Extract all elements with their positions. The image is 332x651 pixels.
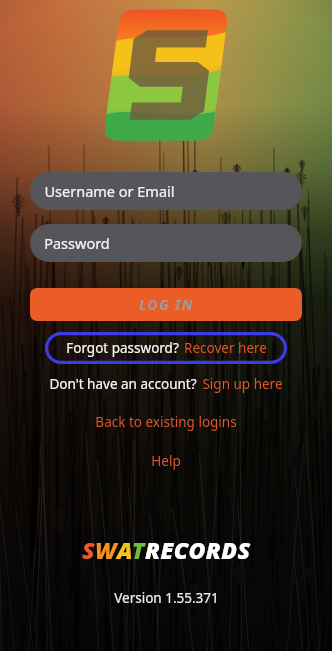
button[interactable]: Don't have an account?	[45, 372, 287, 396]
staticText: Don't have an account?	[49, 375, 197, 393]
button[interactable]: Password	[30, 224, 302, 262]
staticText: Password	[44, 233, 110, 253]
staticText: LOG IN	[139, 295, 194, 314]
button[interactable]: Help	[145, 449, 187, 473]
button[interactable]: Username or Email	[30, 172, 302, 210]
staticText: Version 1.55.371	[114, 589, 219, 607]
other: SWAT logo	[97, 6, 235, 144]
staticText: SWATRECORDS	[82, 534, 251, 565]
button[interactable]: Back to existing logins	[89, 410, 243, 434]
staticText: Recover here	[184, 339, 267, 357]
staticText: Username or Email	[44, 181, 175, 201]
staticText: Forgot password?	[66, 339, 179, 357]
staticText: Help	[151, 452, 181, 470]
button[interactable]: Forgot password?	[45, 332, 287, 364]
staticText: Back to existing logins	[95, 413, 237, 431]
staticText: Sign up here	[202, 375, 283, 393]
button[interactable]: SWATRECORDS	[78, 530, 255, 569]
button[interactable]: LOG IN	[30, 288, 302, 321]
